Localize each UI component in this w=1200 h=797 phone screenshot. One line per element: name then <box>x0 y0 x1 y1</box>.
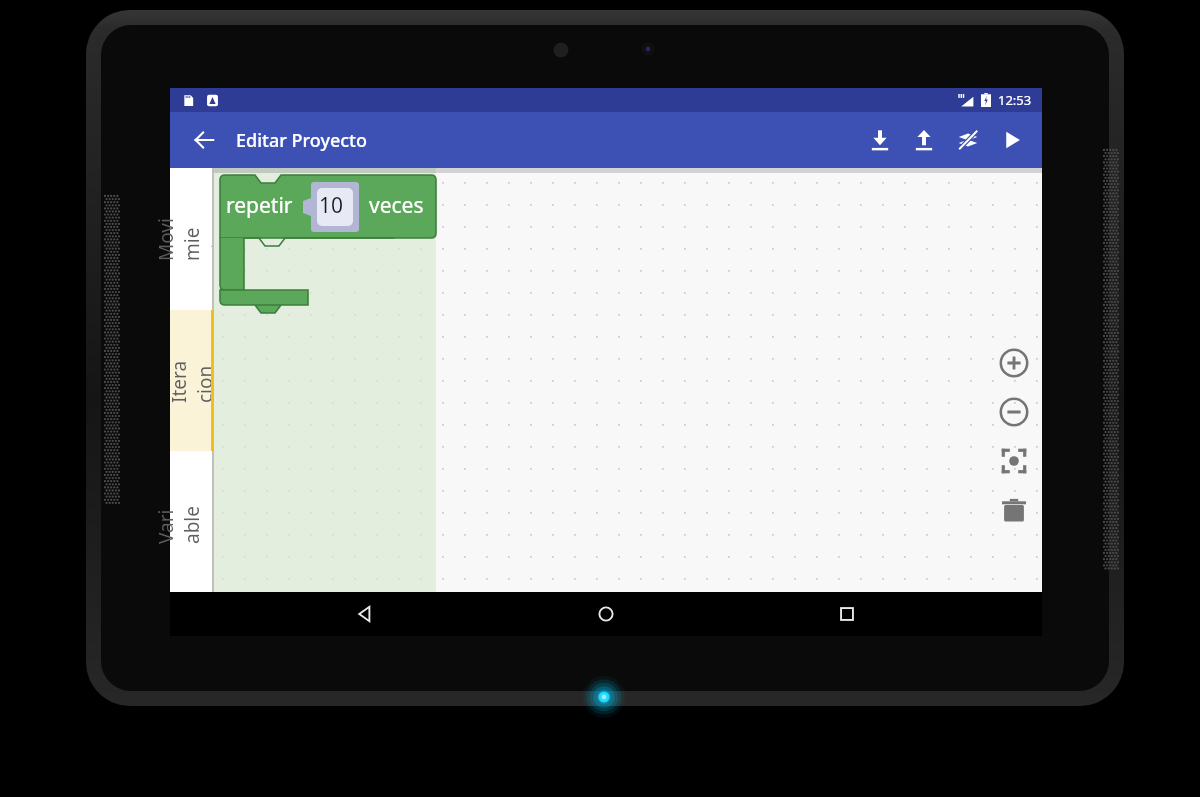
button[interactable]: Download <box>858 118 902 162</box>
button[interactable]: Upload <box>902 118 946 162</box>
staticText: Variables <box>153 500 231 544</box>
staticText: Iteracion <box>166 359 218 403</box>
button[interactable]: Home <box>560 592 652 636</box>
button[interactable]: Back <box>319 592 411 636</box>
staticText: Movimiento <box>153 217 231 261</box>
staticText: Editar Proyecto <box>236 128 367 153</box>
button[interactable]: Recents <box>801 592 893 636</box>
button[interactable]: Iteracion <box>170 310 214 451</box>
staticText: 10 <box>319 191 344 220</box>
button[interactable]: Delete <box>994 490 1034 530</box>
button[interactable]: Movimiento <box>170 168 214 310</box>
button[interactable]: Toggle layers <box>946 118 990 162</box>
staticText: 12:53 <box>998 91 1032 109</box>
button[interactable]: Variables <box>170 451 214 592</box>
staticText: veces <box>369 191 424 220</box>
button[interactable]: Zoom out <box>994 392 1034 432</box>
staticText: repetir <box>226 191 293 220</box>
button[interactable]: Back <box>182 118 226 162</box>
button[interactable]: repetir 10 veces <box>217 172 437 292</box>
button[interactable]: Run <box>990 118 1034 162</box>
button[interactable]: Center view <box>994 441 1034 481</box>
button[interactable]: Zoom in <box>994 343 1034 383</box>
